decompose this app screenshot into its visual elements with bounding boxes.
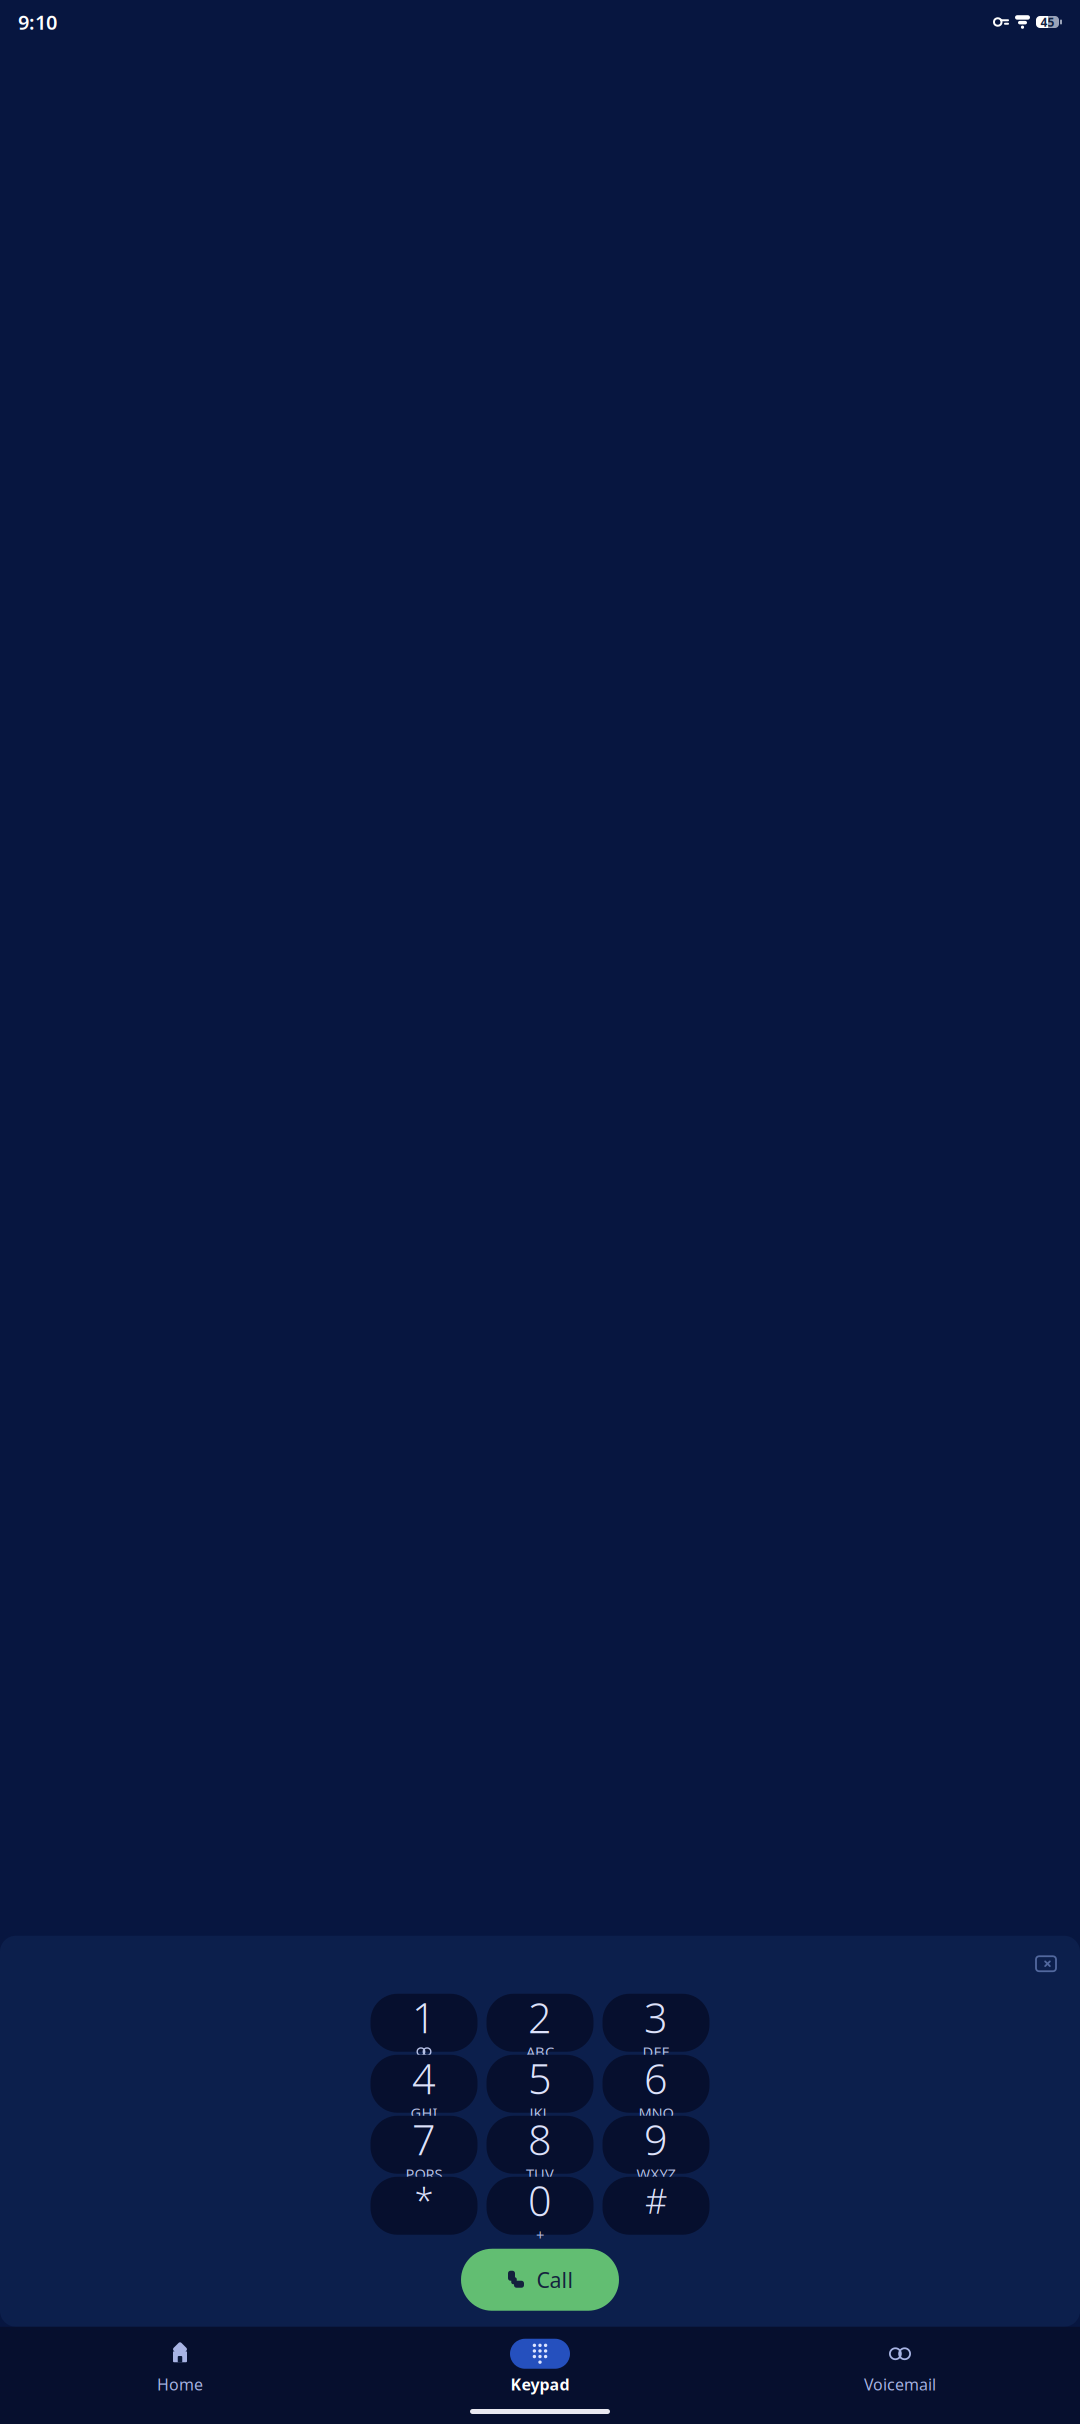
staticText: PQRS — [405, 2164, 442, 2183]
staticText: 5 — [528, 2051, 552, 2106]
staticText: TUV — [526, 2164, 554, 2183]
staticText: + — [536, 2225, 544, 2244]
button[interactable]: 3 — [602, 1994, 709, 2052]
button[interactable]: 6 — [602, 2055, 709, 2113]
staticText: 1 — [412, 1990, 436, 2045]
button[interactable]: 4 — [370, 2055, 477, 2113]
staticText: 6 — [644, 2051, 668, 2106]
staticText: 9:10 — [18, 9, 57, 35]
staticText: 0 — [528, 2173, 552, 2228]
button[interactable]: Backspace — [1024, 1944, 1068, 1984]
button[interactable]: Home — [0, 2339, 360, 2395]
staticText: 45 — [1040, 14, 1054, 30]
staticText: Keypad — [510, 2374, 569, 2395]
button[interactable]: 2 — [486, 1994, 593, 2052]
staticText: ABC — [526, 2042, 554, 2061]
button[interactable]: Voicemail — [720, 2339, 1080, 2395]
staticText: WXYZ — [636, 2164, 675, 2183]
staticText: 7 — [412, 2112, 436, 2167]
staticText: 8 — [528, 2112, 552, 2167]
button[interactable]: 8 — [486, 2116, 593, 2174]
staticText: 2 — [528, 1990, 552, 2045]
button[interactable]: 9 — [602, 2116, 709, 2174]
staticText: 9 — [644, 2112, 668, 2167]
staticText: 4 — [412, 2051, 436, 2106]
button[interactable]: * — [370, 2177, 477, 2235]
button[interactable]: 7 — [370, 2116, 477, 2174]
button[interactable]: # — [602, 2177, 709, 2235]
button[interactable]: Call — [461, 2249, 619, 2311]
staticText: JKL — [529, 2103, 550, 2122]
staticText: * — [414, 2177, 433, 2223]
staticText: DEF — [642, 2042, 669, 2061]
button[interactable]: 1 — [370, 1994, 477, 2052]
button[interactable]: Keypad — [360, 2339, 720, 2395]
staticText: 3 — [644, 1990, 668, 2045]
button[interactable]: 0 — [486, 2177, 593, 2235]
staticText: GHI — [410, 2103, 437, 2122]
staticText: Home — [157, 2374, 203, 2395]
staticText: # — [645, 2177, 667, 2223]
staticText: Call — [536, 2266, 573, 2294]
staticText: Voicemail — [864, 2374, 936, 2395]
staticText: MNO — [638, 2103, 673, 2122]
button[interactable]: 5 — [486, 2055, 593, 2113]
